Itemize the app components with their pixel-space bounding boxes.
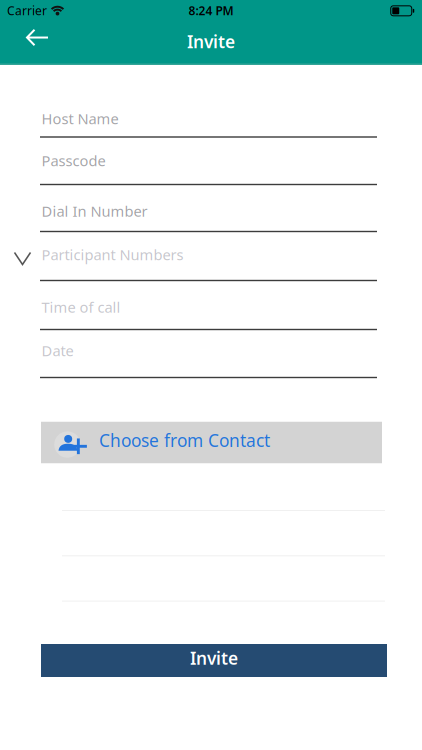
button[interactable]: Invite <box>41 644 387 677</box>
staticText: Host Name <box>41 109 118 128</box>
button[interactable]: Passcode <box>0 0 422 750</box>
button[interactable]: Dial In Number <box>0 0 422 750</box>
button[interactable]: Choose from Contact <box>41 422 382 463</box>
staticText: Dial In Number <box>41 201 147 221</box>
button[interactable]: Host Name <box>0 0 422 750</box>
button[interactable]: Expand participant numbers <box>14 252 30 264</box>
staticText: Time of call <box>41 297 120 317</box>
staticText: Participant Numbers <box>41 245 183 264</box>
button[interactable]: Time of call <box>0 0 422 750</box>
button[interactable]: Date <box>0 0 422 750</box>
button[interactable]: Participant Numbers <box>0 0 422 750</box>
staticText: Invite <box>187 30 235 53</box>
staticText: Choose from Contact <box>99 429 270 452</box>
staticText: Invite <box>190 646 238 669</box>
staticText: Date <box>41 341 73 360</box>
staticText: 8:24 PM <box>188 3 233 18</box>
staticText: Carrier <box>7 3 47 18</box>
staticText: Passcode <box>41 151 105 170</box>
button[interactable]: Back <box>27 30 48 45</box>
